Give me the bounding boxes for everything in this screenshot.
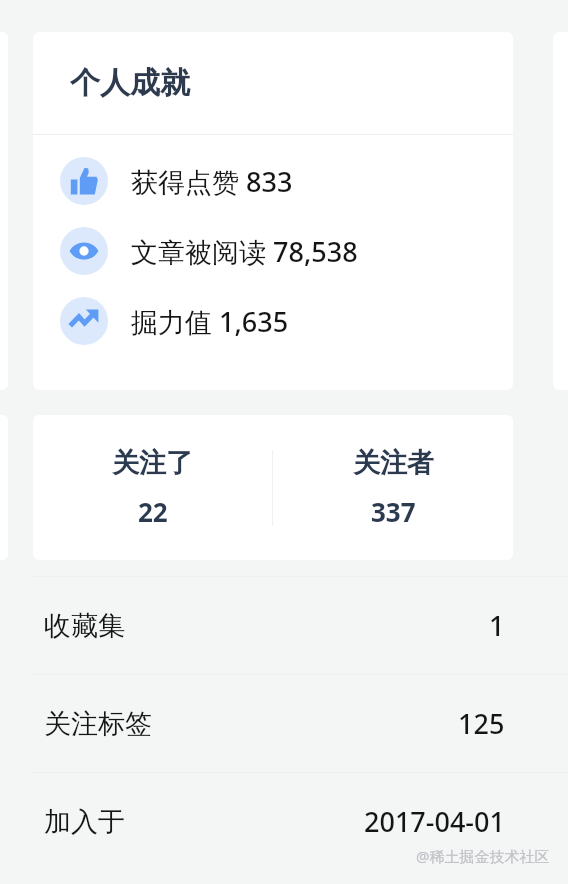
- staticText: 关注标签: [44, 707, 152, 741]
- button[interactable]: Power value: [33, 297, 513, 345]
- staticText: 2017-04-01: [364, 803, 505, 840]
- staticText: 关注了: [112, 446, 193, 480]
- button[interactable]: Likes: [33, 157, 513, 205]
- staticText: 文章被阅读 78,538: [131, 233, 358, 270]
- staticText: 125: [458, 705, 505, 742]
- other: Views: [60, 227, 108, 275]
- staticText: 加入于: [44, 805, 125, 839]
- button[interactable]: 关注标签: [0, 675, 568, 772]
- staticText: 获得点赞 833: [131, 163, 293, 200]
- button[interactable]: 关注了: [33, 415, 272, 560]
- staticText: 掘力值 1,635: [131, 303, 289, 340]
- button[interactable]: 收藏集: [0, 577, 568, 674]
- button[interactable]: Views: [33, 227, 513, 275]
- staticText: 22: [138, 494, 168, 529]
- other: Likes: [60, 157, 108, 205]
- staticText: 个人成就: [70, 64, 190, 102]
- staticText: 337: [371, 494, 416, 529]
- staticText: 关注者: [353, 446, 434, 480]
- button[interactable]: 个人成就: [33, 32, 513, 134]
- button[interactable]: 加入于: [0, 773, 568, 870]
- staticText: 1: [489, 607, 505, 644]
- staticText: 收藏集: [44, 609, 125, 643]
- button[interactable]: 关注者: [273, 415, 513, 560]
- staticText: @稀土掘金技术社区: [416, 846, 550, 866]
- other: Power value: [60, 297, 108, 345]
